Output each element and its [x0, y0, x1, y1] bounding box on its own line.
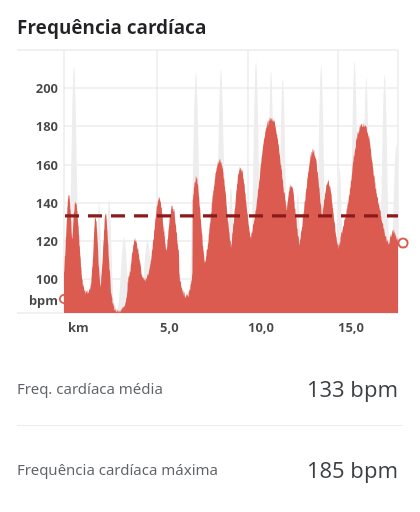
staticText: 185 bpm	[306, 454, 398, 484]
button[interactable]: Frequência cardíaca máxima	[0, 426, 420, 512]
staticText: 133 bpm	[306, 373, 398, 403]
staticText: Freq. cardíaca média	[17, 378, 163, 398]
staticText: 200	[0, 79, 58, 97]
staticText: 15,0	[338, 318, 365, 336]
staticText: Frequência cardíaca	[17, 14, 207, 40]
staticText: Frequência cardíaca máxima	[17, 459, 218, 479]
staticText: 5,0	[160, 318, 179, 336]
staticText: bpm	[0, 291, 58, 309]
staticText: 180	[0, 117, 58, 135]
staticText: 100	[0, 270, 58, 288]
staticText: 120	[0, 232, 58, 250]
staticText: 160	[0, 156, 58, 174]
staticText: km	[68, 318, 89, 336]
staticText: 10,0	[248, 318, 275, 336]
button[interactable]: Freq. cardíaca média	[0, 350, 420, 425]
staticText: 140	[0, 194, 58, 212]
